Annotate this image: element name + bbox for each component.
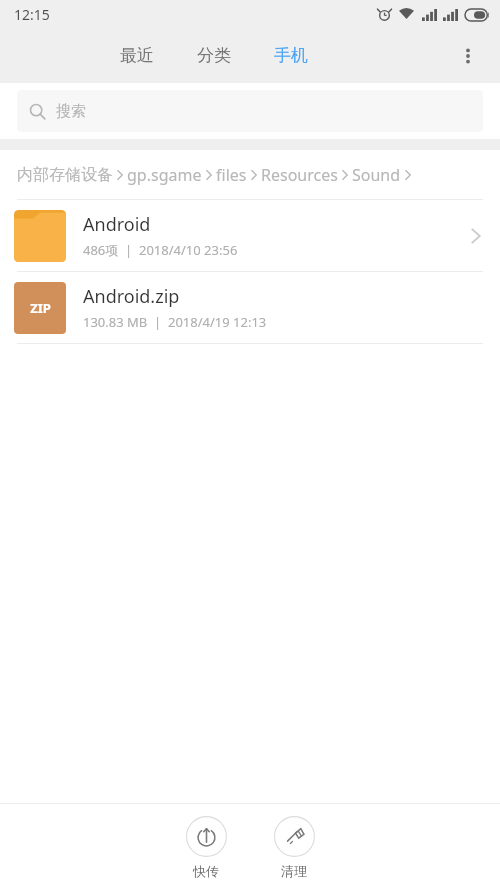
button[interactable]: 搜索 — [17, 90, 483, 132]
button[interactable]: 手机 — [274, 28, 308, 83]
staticText: Android — [83, 212, 151, 237]
staticText: Sound — [352, 164, 401, 186]
staticText: ZIP — [30, 299, 51, 317]
staticText: Android.zip — [83, 284, 180, 309]
staticText: 130.83 MB | 2018/4/19 12:13 — [83, 313, 267, 331]
staticText: 内部存储设备 — [17, 165, 113, 185]
staticText: 分类 — [197, 45, 231, 66]
staticText: 搜索 — [56, 102, 86, 121]
staticText: Resources — [261, 164, 338, 186]
button[interactable]: 清理 — [261, 804, 327, 879]
button[interactable]: Android — [0, 200, 500, 271]
button[interactable]: 内部存储设备 — [17, 150, 500, 199]
button[interactable]: More options — [446, 34, 490, 78]
staticText: gp.sgame — [127, 164, 202, 186]
staticText: 最近 — [120, 45, 154, 66]
staticText: 12:15 — [14, 5, 50, 24]
button[interactable]: ZIP — [0, 272, 500, 343]
staticText: 清理 — [281, 863, 307, 879]
staticText: 快传 — [193, 863, 219, 879]
staticText: files — [216, 164, 247, 186]
button[interactable]: 分类 — [197, 28, 231, 83]
button[interactable]: 最近 — [120, 28, 154, 83]
button[interactable]: 快传 — [173, 804, 239, 879]
staticText: 手机 — [274, 45, 308, 66]
staticText: 486项 | 2018/4/10 23:56 — [83, 241, 238, 259]
